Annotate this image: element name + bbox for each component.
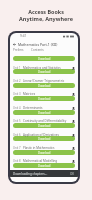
staticText: Linear/Cramer Trigonometric Functions — [23, 79, 75, 83]
staticText: Determinants — [23, 106, 43, 110]
button[interactable]: Contents — [30, 48, 45, 52]
button[interactable]: Download — [71, 92, 75, 96]
staticText: Unit 5 — [13, 119, 21, 123]
button[interactable]: Download — [13, 136, 75, 141]
staticText: Application of Derivatives — [23, 133, 59, 137]
staticText: Unit 6 — [13, 133, 21, 137]
button[interactable]: Download — [13, 96, 75, 101]
button[interactable]: Downloading chapters... — [10, 170, 78, 177]
button[interactable]: Download — [13, 150, 75, 155]
staticText: Download — [38, 124, 51, 128]
staticText: Continuity and Differentiability — [23, 119, 67, 123]
button[interactable]: Download — [13, 56, 75, 61]
staticText: Mathematics Part-1 (XII) — [18, 42, 58, 47]
staticText: Unit 7 — [13, 146, 21, 150]
staticText: Plastic in Mathematics — [23, 146, 55, 150]
staticText: Anytime, Anywhere — [19, 15, 73, 22]
staticText: Download — [38, 57, 51, 61]
staticText: Download — [38, 151, 51, 155]
staticText: Access Books — [28, 8, 64, 15]
staticText: Unit 8 — [13, 159, 21, 163]
button[interactable]: Download — [71, 133, 75, 137]
staticText: Download — [38, 111, 51, 115]
button[interactable]: Back — [12, 42, 17, 47]
button[interactable]: Download — [71, 106, 75, 110]
staticText: Contents — [31, 48, 44, 52]
staticText: Mathematics and Statistics — [23, 66, 61, 70]
staticText: Unit 4 — [13, 106, 21, 110]
staticText: Unit 3 — [13, 92, 21, 96]
staticText: Prelims — [13, 48, 24, 52]
button[interactable]: Download — [71, 119, 75, 123]
staticText: 9:41 — [20, 34, 27, 38]
button[interactable]: Download — [71, 146, 75, 150]
staticText: Download — [38, 84, 51, 88]
staticText: Unit 2 — [13, 79, 21, 83]
button[interactable]: Download — [13, 83, 75, 88]
button[interactable]: Download — [13, 163, 75, 168]
staticText: OK — [70, 172, 75, 176]
staticText: Downloading chapters... — [13, 172, 48, 176]
button[interactable]: Download — [13, 123, 75, 128]
staticText: Mathematical Modelling — [23, 159, 58, 163]
button[interactable]: Download — [71, 159, 75, 163]
staticText: Unit 1 — [13, 66, 21, 70]
staticText: Download — [38, 164, 51, 168]
button[interactable]: Download — [71, 66, 75, 70]
button[interactable]: Download — [13, 69, 75, 74]
staticText: Download — [38, 137, 51, 141]
staticText: Download — [38, 70, 51, 74]
staticText: Matrices — [23, 92, 36, 96]
staticText: Download — [38, 97, 51, 101]
button[interactable]: Prelims — [12, 48, 25, 52]
button[interactable]: Download — [13, 110, 75, 115]
